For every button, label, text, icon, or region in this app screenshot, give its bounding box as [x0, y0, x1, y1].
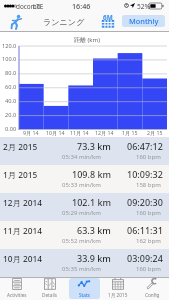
staticText: 1月 2015 [3, 169, 38, 180]
staticText: 162 bpm [136, 237, 161, 245]
staticText: Stats [79, 292, 90, 298]
staticText: 1月 2015 [108, 292, 128, 298]
button[interactable]: Running activity [7, 13, 26, 30]
staticText: 160 bpm [136, 153, 161, 161]
button[interactable]: Activities [0, 277, 33, 300]
button[interactable]: 12月 2014 [0, 193, 169, 221]
staticText: 80.0 [5, 69, 17, 77]
button[interactable]: 1月 2015 [0, 165, 169, 193]
staticText: 40.0 [5, 97, 17, 105]
staticText: 60.0 [5, 83, 17, 91]
staticText: 09:20:30 [127, 196, 163, 208]
staticText: 63.3 km [77, 224, 111, 236]
staticText: 16:46 [72, 1, 91, 11]
staticText: 05:33 min/km [62, 181, 101, 189]
staticText: 109.8 km [72, 168, 111, 180]
staticText: 06:47:12 [127, 140, 163, 152]
staticText: 11月 2014 [3, 225, 42, 236]
staticText: docomo [16, 2, 41, 11]
staticText: 12月 14 [95, 129, 114, 136]
staticText: LTE [33, 2, 44, 11]
staticText: 33.9 km [77, 252, 111, 264]
button[interactable]: 1月 2015 [101, 277, 135, 300]
staticText: 100.0 [2, 55, 17, 63]
staticText: 160 bpm [136, 265, 161, 273]
staticText: 6M [103, 13, 113, 22]
button[interactable]: Config [135, 277, 169, 300]
staticText: 73.3 km [77, 140, 111, 152]
staticText: 9月 14 [23, 129, 39, 136]
staticText: 2月 2015 [3, 141, 38, 152]
button[interactable]: Stats [67, 277, 101, 300]
staticText: 158 bpm [136, 181, 161, 189]
staticText: Details [42, 292, 58, 298]
staticText: 1月 15 [122, 129, 138, 136]
staticText: 20.0 [5, 111, 17, 119]
staticText: 10月 2014 [3, 253, 42, 264]
staticText: 160 bpm [136, 209, 161, 217]
staticText: 12月 2014 [3, 197, 42, 208]
button[interactable]: 10月 2014 [0, 249, 169, 277]
button[interactable]: 2月 2015 [0, 137, 169, 165]
staticText: 05:52 min/km [62, 237, 101, 245]
staticText: 0.00 [5, 125, 17, 133]
staticText: Monthly [129, 16, 159, 26]
staticText: 05:29 min/km [62, 209, 101, 217]
staticText: 06:11:31 [127, 224, 163, 236]
button[interactable]: Monthly [122, 15, 165, 27]
staticText: Config [145, 292, 160, 298]
staticText: ランニング [43, 17, 85, 27]
staticText: 10:09:32 [127, 168, 163, 180]
staticText: 05:34 min/km [62, 153, 101, 161]
staticText: 120.0 [2, 42, 17, 50]
button[interactable]: Details [33, 277, 67, 300]
button[interactable]: Six month view [100, 14, 115, 29]
staticText: 2月 15 [147, 129, 163, 136]
button[interactable]: 11月 2014 [0, 221, 169, 249]
staticText: 52% [137, 2, 151, 11]
staticText: 11月 14 [70, 129, 89, 136]
staticText: 102.1 km [72, 196, 111, 208]
staticText: 距離 (km) [74, 36, 100, 44]
staticText: 10月 14 [46, 129, 65, 136]
staticText: Activities [7, 292, 27, 298]
staticText: 03:09:24 [127, 252, 163, 264]
staticText: 05:35 min/km [62, 265, 101, 273]
